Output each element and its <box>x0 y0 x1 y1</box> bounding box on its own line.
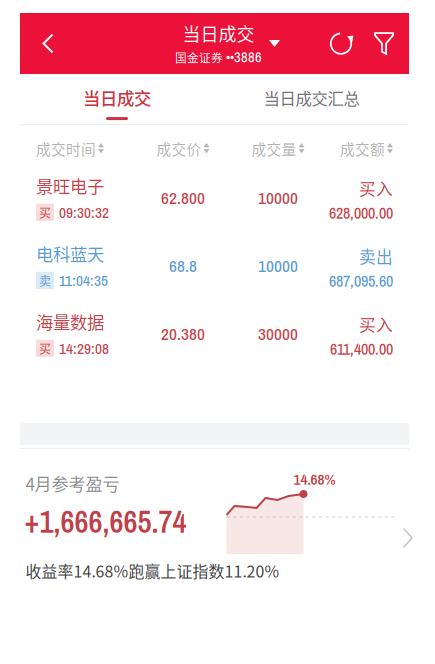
staticText: 买 <box>39 340 51 357</box>
button[interactable]: 4月参考盈亏 <box>20 449 409 589</box>
button[interactable]: 海量数据 <box>20 301 409 369</box>
staticText: 4月参考盈亏 <box>25 471 119 496</box>
staticText: 14:29:08 <box>59 338 109 359</box>
staticText: 收益率14.68%跑赢上证指数11.20% <box>25 559 279 582</box>
button[interactable]: 电科蓝天 <box>20 233 409 301</box>
staticText: 买 <box>39 204 51 221</box>
button[interactable]: Back <box>24 13 72 74</box>
staticText: 当日成交 <box>83 85 151 110</box>
staticText: 成交时间 <box>36 138 96 159</box>
staticText: 买入 <box>359 312 393 336</box>
staticText: 30000 <box>258 322 298 345</box>
staticText: +1,666,665.74 <box>24 501 186 542</box>
staticText: 景旺电子 <box>36 173 104 198</box>
staticText: 电科蓝天 <box>36 241 104 266</box>
staticText: 68.8 <box>169 254 197 277</box>
staticText: 20.380 <box>161 322 205 345</box>
staticText: 卖出 <box>359 244 393 268</box>
staticText: 海量数据 <box>36 309 104 334</box>
staticText: ••3886 <box>226 47 262 67</box>
staticText: 当日成交汇总 <box>263 86 359 109</box>
staticText: 14.68% <box>293 469 335 490</box>
staticText: 10000 <box>258 254 298 277</box>
button[interactable]: Refresh <box>319 13 363 74</box>
staticText: 成交价 <box>156 138 201 159</box>
button[interactable]: 当日成交 <box>20 74 214 124</box>
staticText: 628,000.00 <box>329 202 393 224</box>
button[interactable]: Account selector <box>149 20 280 67</box>
staticText: 687,095.60 <box>329 270 393 292</box>
button[interactable]: 景旺电子 <box>20 165 409 233</box>
staticText: 62.800 <box>161 186 205 209</box>
button[interactable]: Filter <box>363 13 405 74</box>
staticText: 买入 <box>359 176 393 200</box>
staticText: 09:30:32 <box>59 202 109 223</box>
staticText: 611,400.00 <box>330 338 393 360</box>
staticText: 10000 <box>258 186 298 209</box>
staticText: 当日成交 <box>182 20 254 46</box>
staticText: 成交额 <box>340 138 385 159</box>
staticText: 国金证券 <box>175 48 223 65</box>
staticText: 11:04:35 <box>59 270 108 291</box>
staticText: 成交量 <box>251 138 296 159</box>
button[interactable]: 当日成交汇总 <box>214 74 409 124</box>
staticText: 卖 <box>39 272 51 289</box>
